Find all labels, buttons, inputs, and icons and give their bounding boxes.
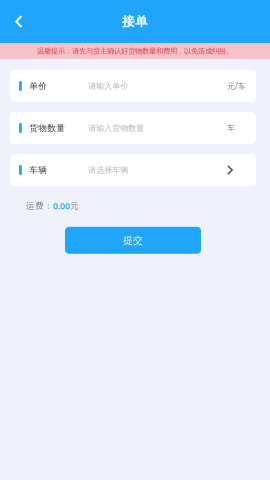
staticText: 运费： xyxy=(26,200,53,211)
staticText: 提交 xyxy=(123,234,143,247)
staticText: 车 xyxy=(227,123,235,133)
button[interactable]: 提交 xyxy=(65,227,201,254)
staticText: 温馨提示：请先与货主确认好货物数量和费用，以免造成纠纷。 xyxy=(37,46,233,56)
staticText: 元/车 xyxy=(227,81,246,91)
button[interactable]: 返回 xyxy=(4,6,34,36)
staticText: 元 xyxy=(70,200,79,211)
staticText: 请输入单价 xyxy=(88,81,128,91)
staticText: 请输入货物数量 xyxy=(88,123,144,133)
staticText: 接单 xyxy=(122,13,148,29)
staticText: 0.00 xyxy=(53,200,70,212)
staticText: 货物数量 xyxy=(29,122,65,133)
button[interactable]: 单价 xyxy=(10,70,256,102)
staticText: 请选择车辆 xyxy=(88,165,128,175)
button[interactable]: 货物数量 xyxy=(10,112,256,144)
staticText: 车辆 xyxy=(29,164,47,175)
staticText: 单价 xyxy=(29,80,47,91)
button[interactable]: 车辆 xyxy=(10,154,256,186)
